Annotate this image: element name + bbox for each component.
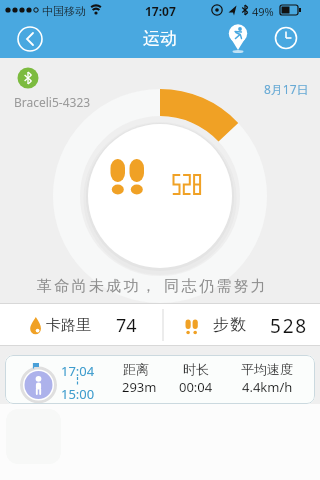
staticText: 15:00 <box>61 385 95 403</box>
staticText: 运动 <box>143 28 177 49</box>
staticText: 17:04 <box>61 362 95 380</box>
staticText: 293m <box>122 378 157 396</box>
button[interactable] <box>14 23 46 55</box>
button[interactable]: 17:04 <box>5 355 315 404</box>
button[interactable] <box>224 22 252 54</box>
staticText: 中国移动 <box>42 4 86 18</box>
staticText: 4.4km/h <box>242 378 293 396</box>
staticText: 49% <box>252 4 274 19</box>
staticText: 步数 <box>212 315 247 335</box>
button[interactable] <box>0 304 163 345</box>
staticText: 74 <box>116 313 137 338</box>
staticText: 528 <box>270 313 309 339</box>
staticText: Braceli5-4323 <box>14 94 91 110</box>
button[interactable] <box>163 304 320 345</box>
staticText: 革命尚未成功， 同志仍需努力 <box>37 275 269 295</box>
staticText: 8月17日 <box>264 81 309 97</box>
button[interactable] <box>274 26 298 50</box>
staticText: 时长 <box>183 361 209 377</box>
staticText: 距离 <box>123 361 149 377</box>
staticText: 卡路里 <box>46 316 91 335</box>
staticText: 平均速度 <box>241 361 293 377</box>
staticText: 17:07 <box>145 3 176 19</box>
staticText: 00:04 <box>179 378 213 396</box>
